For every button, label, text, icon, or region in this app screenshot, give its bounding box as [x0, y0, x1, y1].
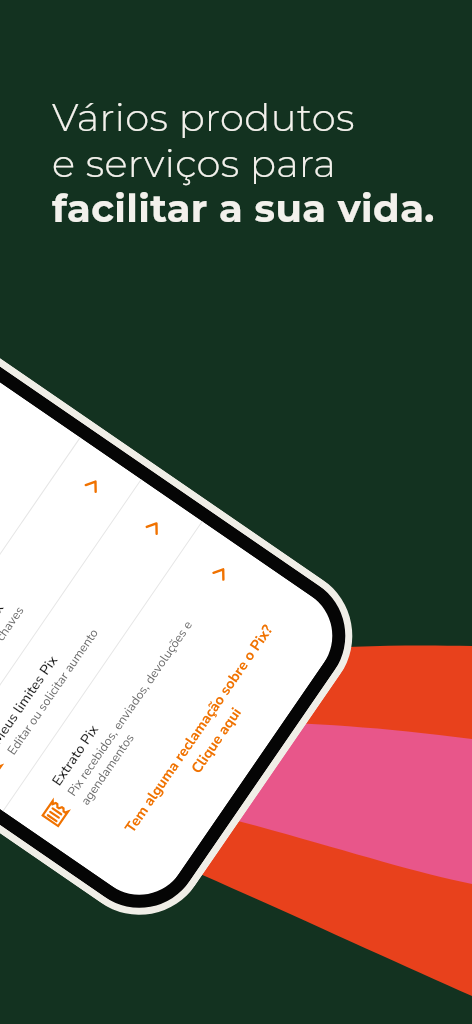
staticText: Criar ou excluir chaves — [0, 603, 28, 716]
staticText: facilitar a sua vida. — [52, 185, 435, 232]
staticText: Tem alguma reclamação sobre o Pix? Cliqu… — [100, 592, 314, 877]
staticText: Extrato Pix — [48, 721, 103, 790]
staticText: Vários produtos e serviços para — [52, 94, 355, 187]
staticText: Minhas chaves Pix — [0, 599, 8, 706]
button[interactable]: Extrato Pix — [2, 521, 275, 861]
button[interactable]: Tem alguma reclamação sobre o Pix? Cliqu… — [76, 571, 322, 894]
staticText: Pix recebidos, enviados, devoluções e ag… — [63, 617, 209, 808]
staticText: Meus limites Pix — [0, 651, 62, 748]
button[interactable]: Meus limites Pix — [0, 479, 202, 811]
staticText: Editar ou solicitar aumento — [3, 625, 102, 758]
button[interactable]: Minhas chaves Pix — [0, 437, 141, 769]
